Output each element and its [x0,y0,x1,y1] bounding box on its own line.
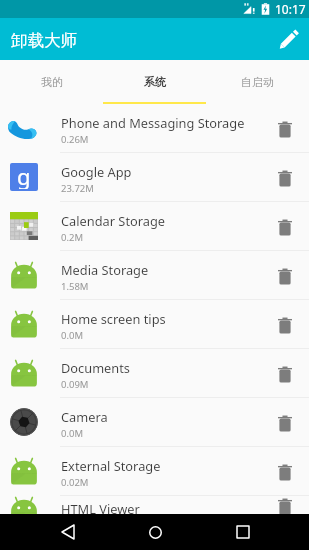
button[interactable]: Calendar Storage [0,202,309,251]
button[interactable]: Phone and Messaging Storage [0,104,309,153]
staticText: 我的 [41,75,63,89]
staticText: Home screen tips [61,310,166,327]
staticText: Documents [61,359,130,376]
button[interactable]: Recents [231,520,255,544]
button[interactable]: HTML Viewer [0,496,309,514]
button[interactable]: Documents [0,349,309,398]
button[interactable]: Camera [0,398,309,447]
staticText: Google App [61,163,132,180]
button[interactable]: External Storage [0,447,309,496]
staticText: 23.72M [61,182,94,195]
button[interactable]: Uninstall [273,361,297,385]
staticText: 1.58M [61,280,89,293]
staticText: 0.26M [61,133,89,146]
staticText: 10:17 [275,1,306,17]
button[interactable]: Uninstall [273,214,297,238]
button[interactable]: Edit [274,24,304,54]
staticText: HTML Viewer [61,500,140,514]
button[interactable]: Uninstall [273,165,297,189]
button[interactable]: Uninstall [273,263,297,287]
staticText: 0.09M [61,378,89,391]
staticText: Media Storage [61,261,149,278]
staticText: 0.0M [61,329,84,342]
button[interactable]: 我的 [0,60,103,104]
button[interactable]: Uninstall [273,116,297,140]
staticText: External Storage [61,457,161,474]
staticText: Camera [61,408,108,425]
staticText: 0.2M [61,231,84,244]
button[interactable]: Uninstall [273,410,297,434]
staticText: Phone and Messaging Storage [61,114,245,131]
staticText: 卸载大师 [11,30,77,51]
button[interactable]: Back [56,520,80,544]
button[interactable]: Home screen tips [0,300,309,349]
staticText: 0.0M [61,427,84,440]
button[interactable]: 自启动 [206,60,309,104]
staticText: 0.02M [61,476,89,489]
button[interactable]: Uninstall [273,312,297,336]
staticText: Calendar Storage [61,212,166,229]
staticText: 系统 [144,75,166,89]
staticText: g [17,163,31,189]
staticText: 自启动 [241,75,274,89]
button[interactable]: Uninstall [273,459,297,483]
button[interactable]: 系统 [103,60,206,104]
button[interactable]: g [0,153,309,202]
button[interactable]: Media Storage [0,251,309,300]
button[interactable]: Uninstall [273,496,297,514]
button[interactable]: Home [143,520,167,544]
